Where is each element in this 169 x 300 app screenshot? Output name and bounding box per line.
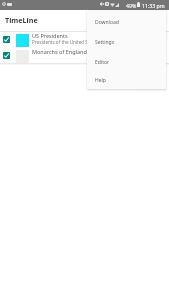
staticText: 11:33 pm [142, 2, 165, 9]
button[interactable]: Toggle US Presidents [3, 36, 10, 43]
staticText: Presidents of the United States of Ameri… [32, 39, 123, 45]
staticText: 49% [126, 2, 137, 9]
button[interactable]: Toggle US Presidents [0, 31, 169, 47]
button[interactable]: Download [87, 12, 166, 32]
staticText: Monarchs of England since 1066 [32, 55, 102, 61]
staticText: Monarchs of England [32, 48, 87, 55]
staticText: US Presidents [32, 32, 68, 39]
button[interactable]: Toggle Monarchs of England [3, 52, 10, 59]
button[interactable]: Settings [87, 32, 166, 52]
button[interactable]: Toggle Monarchs of England [0, 47, 169, 63]
staticText: Settings [95, 39, 115, 46]
staticText: Download [95, 19, 119, 26]
staticText: Editor [95, 59, 110, 66]
button[interactable]: Editor [87, 52, 166, 72]
staticText: TimeLine [5, 15, 38, 25]
staticText: Help [95, 77, 106, 84]
button[interactable]: Help [87, 72, 166, 89]
